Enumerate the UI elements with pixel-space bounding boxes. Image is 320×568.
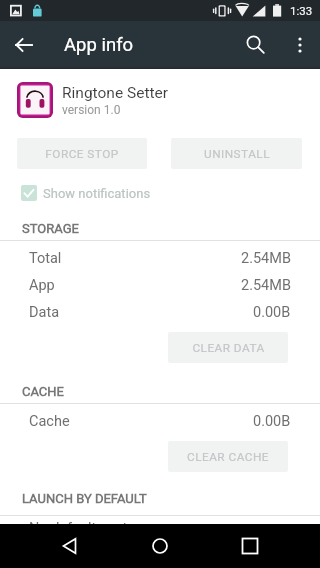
staticText: No defaults set [29,520,128,524]
staticText: STORAGE [22,221,79,236]
button[interactable]: CLEAR DATA [168,332,288,363]
staticText: Show notifications [43,186,151,201]
button[interactable]: FORCE STOP [17,138,147,169]
staticText: 2.54MB [241,277,291,294]
staticText: Data [29,304,60,321]
button[interactable]: Back [0,21,48,69]
staticText: 0.00B [253,304,291,321]
staticText: App [29,277,55,294]
button[interactable]: Search [232,21,280,69]
staticText: LAUNCH BY DEFAULT [22,491,147,506]
button[interactable]: UNINSTALL [171,138,302,169]
staticText: Ringtone Setter [62,84,169,102]
button[interactable]: Total [0,245,320,272]
staticText: 1:33 [290,4,313,17]
button[interactable]: Data [0,299,320,326]
staticText: CACHE [22,384,64,399]
button[interactable]: App [0,272,320,299]
button[interactable]: Home [140,526,180,566]
staticText: FORCE STOP [45,147,119,161]
staticText: CLEAR CACHE [187,450,269,464]
staticText: UNINSTALL [204,147,270,161]
button[interactable]: CLEAR CACHE [168,441,288,472]
button[interactable]: Cache [0,408,320,435]
button[interactable]: More options [280,25,320,65]
staticText: App info [64,34,134,56]
button[interactable]: Recents [230,526,270,566]
staticText: version 1.0 [62,103,121,117]
staticText: Total [29,250,62,267]
staticText: 0.00B [253,413,291,430]
button[interactable]: Show notifications [0,182,320,204]
button[interactable]: Back [50,526,90,566]
staticText: Cache [29,413,70,430]
button[interactable]: No defaults set [0,520,320,524]
staticText: CLEAR DATA [192,341,265,355]
staticText: 2.54MB [241,250,291,267]
